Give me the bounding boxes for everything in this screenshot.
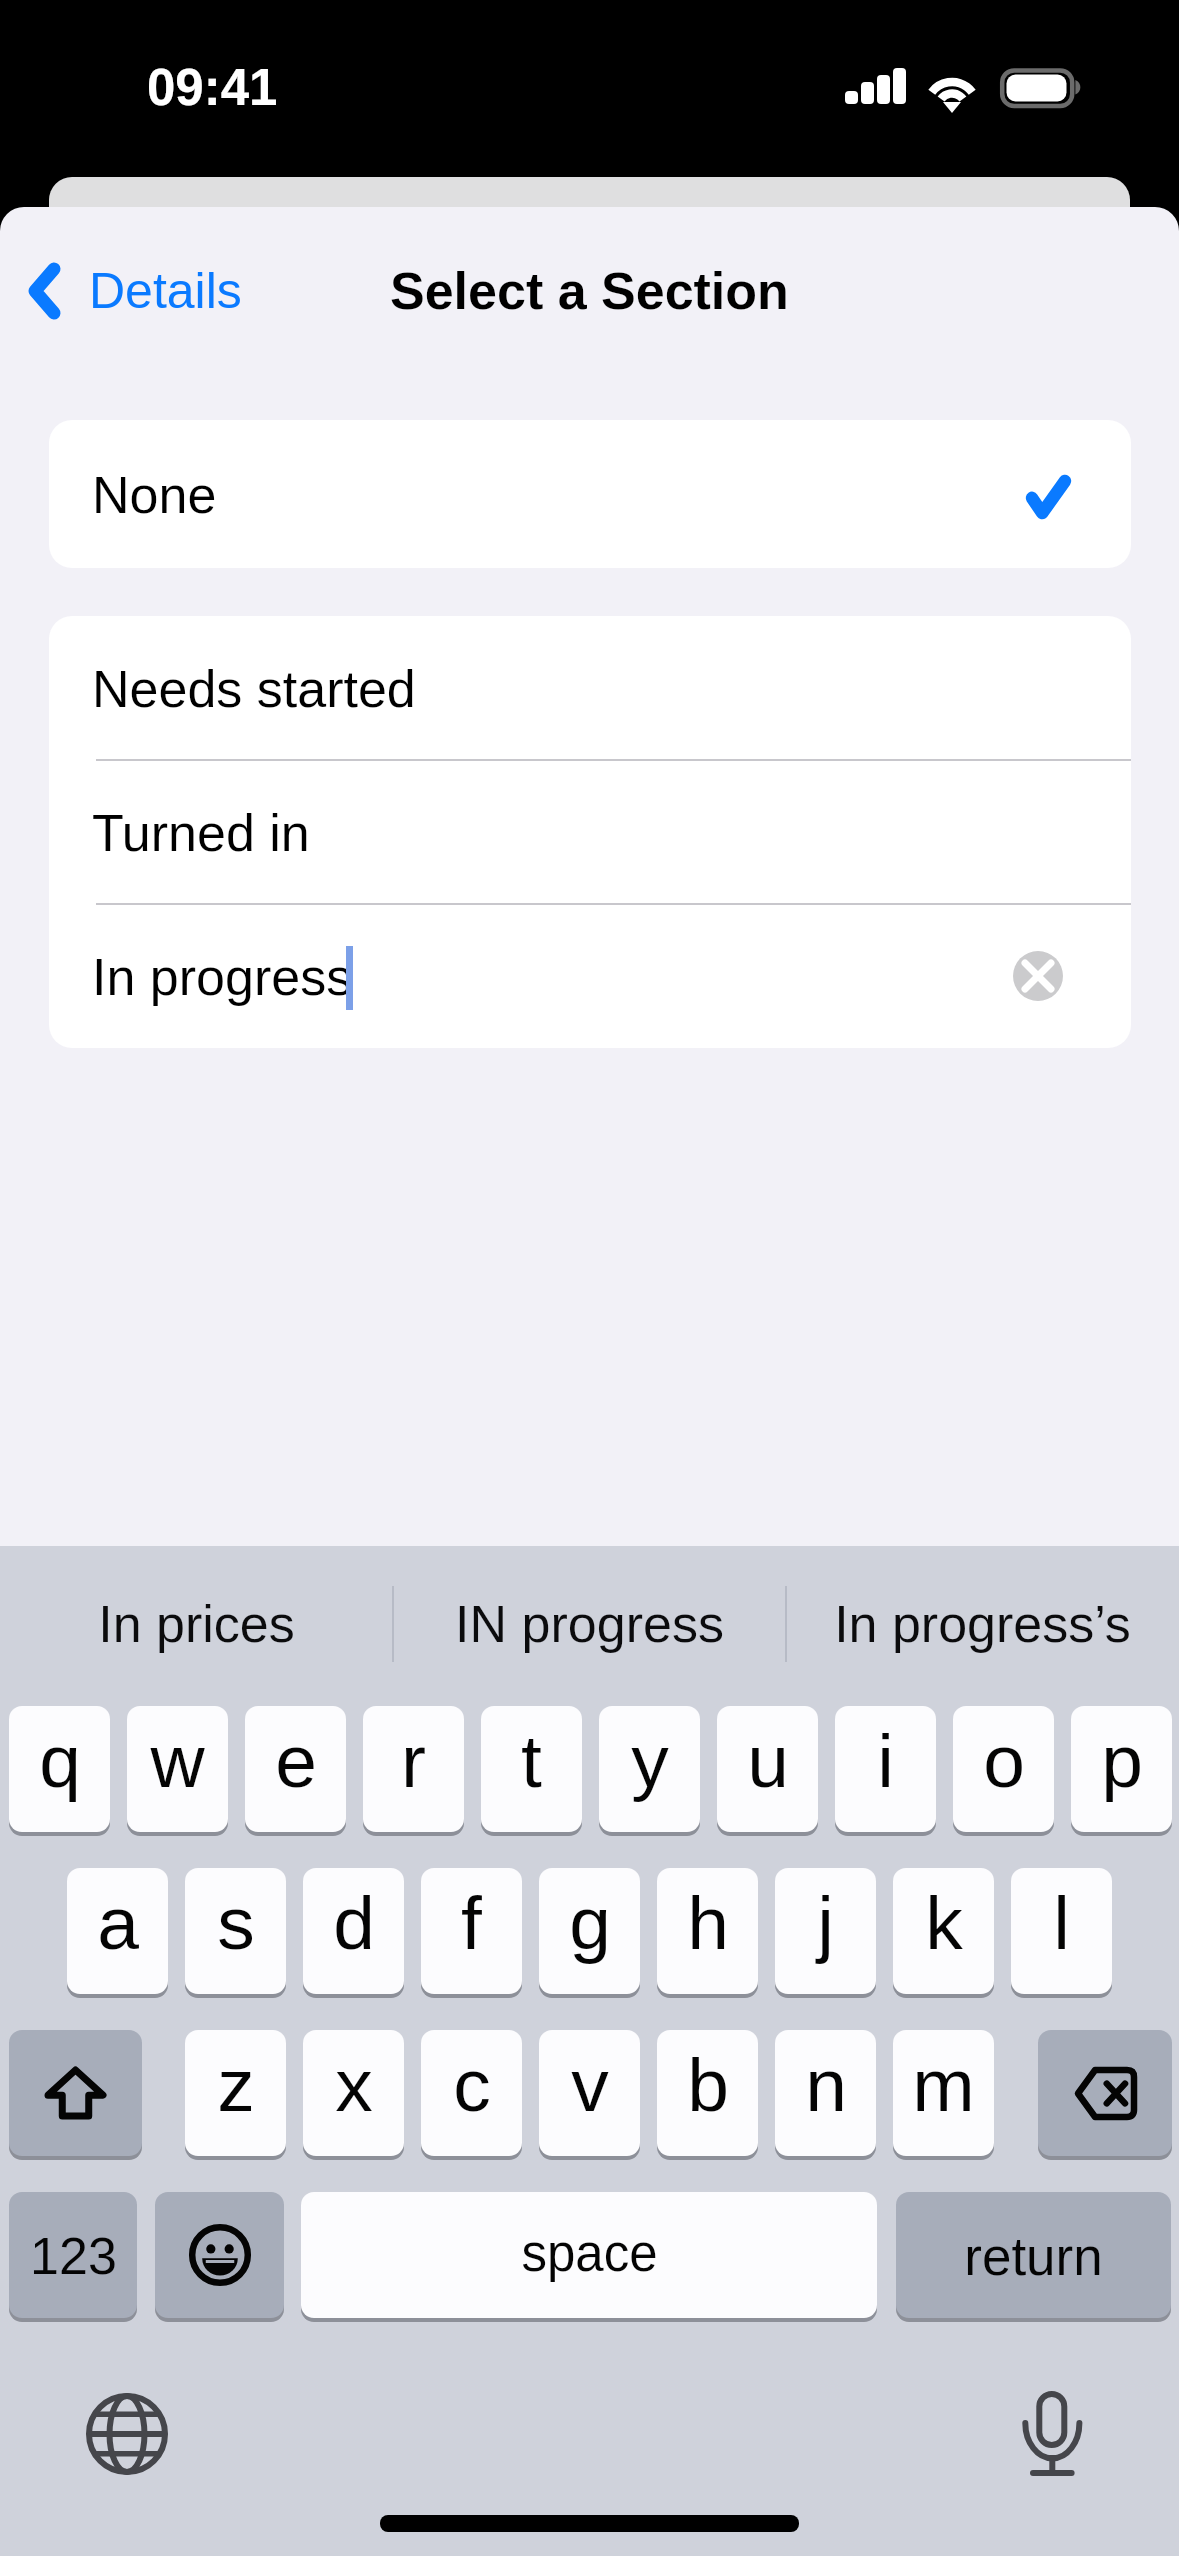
staticText: e (275, 1719, 317, 1803)
staticText: 123 (30, 2227, 117, 2285)
staticText: f (461, 1881, 482, 1965)
staticText: l (1053, 1881, 1070, 1965)
staticText: n (805, 2043, 847, 2127)
button[interactable]: g (539, 1868, 640, 1994)
staticText: a (97, 1881, 139, 1965)
button[interactable]: c (421, 2030, 522, 2156)
button[interactable]: Clear text (1013, 951, 1063, 1001)
button[interactable]: l (1011, 1868, 1112, 1994)
staticText: In progress’s (834, 1595, 1131, 1653)
button[interactable]: q (9, 1706, 110, 1832)
staticText: g (569, 1881, 611, 1965)
button[interactable]: j (775, 1868, 876, 1994)
staticText: space (521, 2225, 658, 2282)
staticText: In prices (98, 1595, 295, 1653)
staticText: v (571, 2043, 609, 2127)
button[interactable]: v (539, 2030, 640, 2156)
staticText: Needs started (92, 660, 416, 718)
button[interactable]: In progress’s (786, 1546, 1179, 1691)
button[interactable]: Backspace (1038, 2030, 1172, 2156)
button[interactable]: d (303, 1868, 404, 1994)
staticText: Select a Section (390, 262, 789, 320)
button[interactable]: Turned in (49, 760, 1131, 904)
button[interactable]: y (599, 1706, 700, 1832)
button[interactable]: return (896, 2192, 1171, 2318)
staticText: x (335, 2043, 373, 2127)
button[interactable]: i (835, 1706, 936, 1832)
button[interactable]: IN progress (393, 1546, 786, 1691)
staticText: k (925, 1881, 963, 1965)
button[interactable]: s (185, 1868, 286, 1994)
staticText: m (912, 2043, 975, 2127)
button[interactable]: In progress (49, 904, 1131, 1048)
button[interactable]: Emoji (155, 2192, 284, 2318)
button[interactable]: b (657, 2030, 758, 2156)
button[interactable]: f (421, 1868, 522, 1994)
button[interactable]: e (245, 1706, 346, 1832)
button[interactable]: x (303, 2030, 404, 2156)
staticText: z (217, 2043, 255, 2127)
button[interactable]: In prices (0, 1546, 393, 1691)
button[interactable]: t (481, 1706, 582, 1832)
button[interactable]: Needs started (49, 616, 1131, 760)
staticText: r (401, 1719, 426, 1803)
staticText: p (1101, 1719, 1143, 1803)
button[interactable]: None (49, 420, 1131, 568)
staticText: None (92, 466, 217, 524)
staticText: i (877, 1719, 894, 1803)
button[interactable]: Change keyboard (62, 2369, 192, 2499)
staticText: d (333, 1881, 375, 1965)
staticText: h (687, 1881, 729, 1965)
button[interactable]: o (953, 1706, 1054, 1832)
button[interactable]: h (657, 1868, 758, 1994)
staticText: q (39, 1719, 81, 1803)
button[interactable]: a (67, 1868, 168, 1994)
staticText: b (687, 2043, 729, 2127)
button[interactable]: w (127, 1706, 228, 1832)
staticText: y (631, 1719, 669, 1803)
button[interactable]: u (717, 1706, 818, 1832)
staticText: w (150, 1719, 205, 1803)
staticText: j (817, 1881, 834, 1965)
button[interactable]: k (893, 1868, 994, 1994)
staticText: s (217, 1881, 255, 1965)
button[interactable]: Dictate (987, 2368, 1117, 2498)
button[interactable]: Shift (9, 2030, 142, 2156)
button[interactable]: 123 (9, 2192, 137, 2318)
staticText: o (983, 1719, 1025, 1803)
button[interactable]: r (363, 1706, 464, 1832)
button[interactable]: z (185, 2030, 286, 2156)
staticText: Turned in (92, 804, 310, 862)
staticText: IN progress (455, 1595, 724, 1653)
button[interactable]: p (1071, 1706, 1172, 1832)
button[interactable]: n (775, 2030, 876, 2156)
button[interactable]: Details (0, 247, 264, 335)
button[interactable]: m (893, 2030, 994, 2156)
staticText: return (964, 2227, 1103, 2286)
staticText: u (747, 1719, 789, 1803)
staticText: Details (89, 263, 242, 319)
staticText: 09:41 (147, 59, 278, 116)
staticText: t (521, 1719, 542, 1803)
button[interactable]: space (301, 2192, 877, 2318)
staticText: In progress (92, 948, 353, 1006)
staticText: c (453, 2043, 491, 2127)
